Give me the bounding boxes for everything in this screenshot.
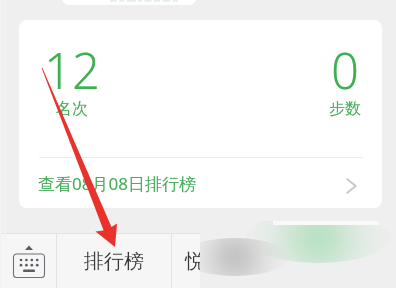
staticText: 查看08月08日排行榜	[38, 172, 196, 195]
button[interactable]: 排行榜	[57, 234, 171, 288]
button[interactable]: 悦	[172, 234, 396, 288]
staticText: 12	[44, 37, 100, 104]
staticText: 悦	[185, 249, 205, 274]
button[interactable]: Switch keyboard	[0, 234, 56, 288]
staticText: 步数	[329, 99, 361, 119]
staticText: 0	[331, 37, 359, 104]
staticText: 排行榜	[84, 249, 144, 274]
staticText: 名次	[56, 99, 88, 119]
button[interactable]: 查看08月08日排行榜	[19, 158, 382, 208]
